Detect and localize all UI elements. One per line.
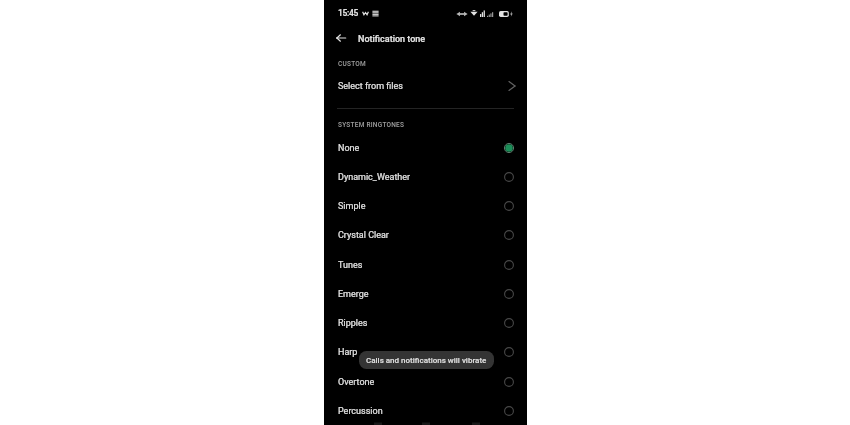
- button[interactable]: Ripples: [324, 308, 527, 337]
- button[interactable]: Crystal Clear: [324, 220, 527, 249]
- button[interactable]: Percussion: [324, 396, 527, 425]
- staticText: Tunes: [338, 260, 363, 271]
- staticText: Percussion: [338, 406, 383, 417]
- staticText: Emerge: [338, 289, 369, 300]
- button[interactable]: Dynamic_Weather: [324, 162, 527, 191]
- staticText: Overtone: [338, 377, 375, 388]
- staticText: Ripples: [338, 318, 368, 329]
- button[interactable]: Harp: [324, 337, 527, 366]
- staticText: Select from files: [338, 81, 403, 92]
- staticText: Dynamic_Weather: [338, 172, 411, 183]
- button[interactable]: Navigate back: [331, 28, 351, 48]
- button[interactable]: None: [324, 133, 527, 162]
- button[interactable]: Tunes: [324, 250, 527, 279]
- staticText: CUSTOM: [338, 60, 366, 68]
- button[interactable]: Overtone: [324, 367, 527, 396]
- staticText: Calls and notifications will vibrate: [366, 356, 487, 365]
- staticText: Simple: [338, 201, 366, 212]
- button[interactable]: Select from files: [324, 74, 527, 97]
- button[interactable]: Simple: [324, 191, 527, 220]
- staticText: 15:45: [338, 8, 359, 18]
- staticText: Crystal Clear: [338, 230, 389, 241]
- staticText: SYSTEM RINGTONES: [338, 121, 405, 129]
- staticText: Harp: [338, 347, 358, 358]
- staticText: None: [338, 143, 360, 154]
- staticText: Notification tone: [358, 34, 426, 45]
- button[interactable]: Emerge: [324, 279, 527, 308]
